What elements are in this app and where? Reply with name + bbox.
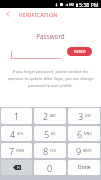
button[interactable]: 6 <box>68 126 100 141</box>
button[interactable]: 7 <box>1 143 32 158</box>
staticText: 7 <box>9 145 15 157</box>
staticText: 1 <box>14 110 20 122</box>
staticText: 8 <box>43 145 49 157</box>
staticText: 5 <box>44 128 50 140</box>
staticText: Password <box>0 32 101 41</box>
button[interactable]: Back <box>0 8 16 20</box>
staticText: DEF <box>85 114 91 118</box>
staticText: WXYZ <box>83 149 92 153</box>
staticText: 4 <box>10 128 16 140</box>
button[interactable]: 8 <box>34 143 66 158</box>
staticText: TUV <box>50 149 57 153</box>
staticText: JKL <box>51 132 56 136</box>
staticText: VERIFICATION <box>19 11 58 18</box>
staticText: 0 <box>47 162 53 174</box>
button[interactable]: SEND <box>67 47 92 56</box>
button[interactable]: 1 <box>1 108 32 124</box>
staticText: PQRS <box>16 149 25 153</box>
staticText: 6 <box>77 128 83 140</box>
staticText: MNO <box>84 132 92 136</box>
button[interactable]: 3 <box>68 108 100 124</box>
staticText: SEND <box>74 49 86 55</box>
staticText: HD <box>69 2 75 7</box>
staticText: 9 <box>76 145 82 157</box>
staticText: Done <box>78 164 91 171</box>
button[interactable]: 4 <box>1 126 32 141</box>
staticText: 5:38 PM <box>79 1 99 8</box>
button[interactable]: Done <box>68 160 100 175</box>
staticText: If you forget password, please contact t… <box>3 69 98 89</box>
staticText: GHI <box>17 132 23 136</box>
button[interactable]: 5 <box>34 126 66 141</box>
staticText: ABC <box>50 114 57 118</box>
staticText: 3 <box>78 110 84 122</box>
button[interactable]: 0 <box>34 160 66 175</box>
button[interactable]: Backspace <box>1 160 32 175</box>
button[interactable]: 9 <box>68 143 100 158</box>
staticText: 2 <box>43 110 49 122</box>
button[interactable]: 2 <box>34 108 66 124</box>
